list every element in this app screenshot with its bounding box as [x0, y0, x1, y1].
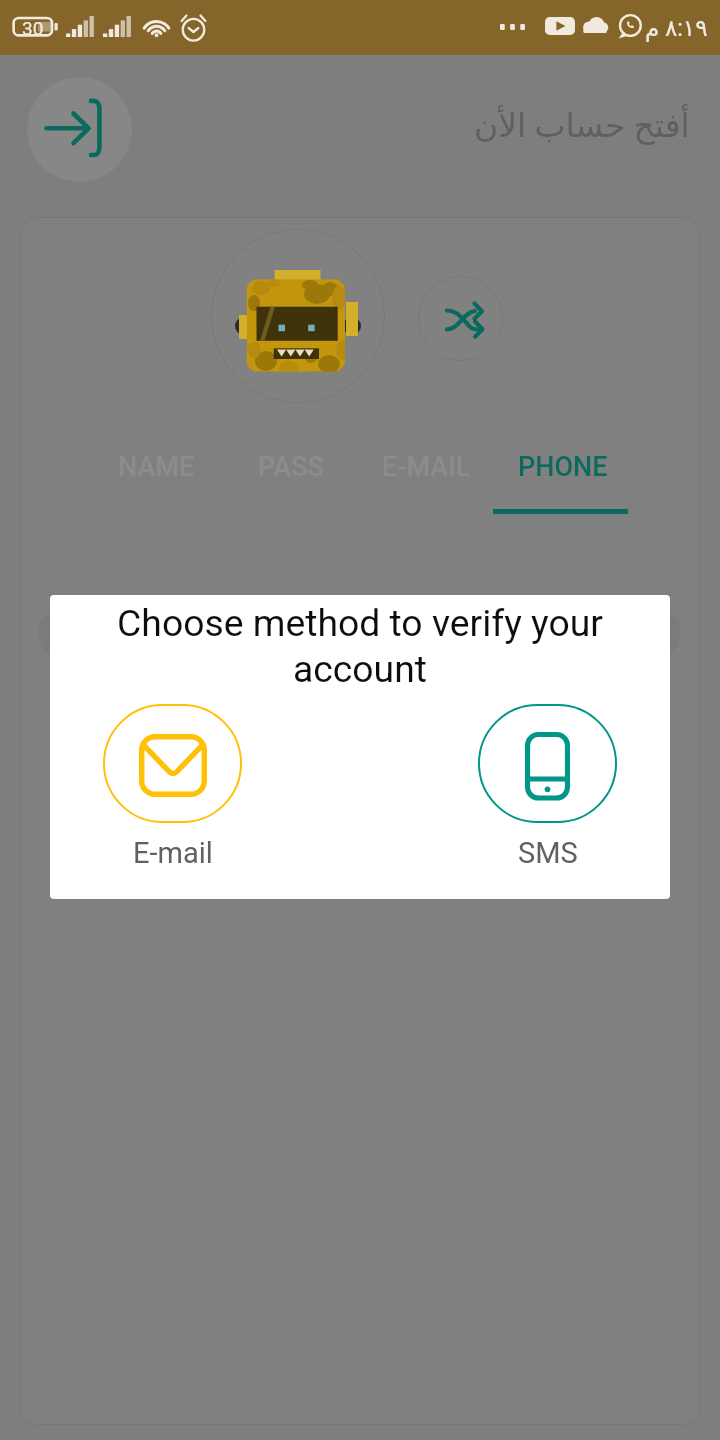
button[interactable]: E-MAIL — [382, 451, 471, 483]
button[interactable]: PASS — [258, 451, 324, 483]
button[interactable]: SMS — [478, 704, 617, 870]
staticText: E-mail — [133, 836, 213, 870]
button[interactable]: Shuffle avatar — [418, 276, 503, 361]
button[interactable]: Login — [26, 76, 133, 183]
staticText: Choose method to verify your account — [64, 601, 656, 691]
button[interactable]: PHONE — [518, 451, 608, 483]
button[interactable]: Avatar — [211, 229, 385, 403]
staticText: SMS — [518, 836, 578, 870]
staticText: 30 — [22, 17, 44, 39]
staticText: أفتح حساب الأن — [474, 106, 690, 145]
button[interactable]: NAME — [118, 451, 195, 483]
button[interactable]: E-mail — [103, 704, 242, 870]
staticText: ٨:١٩ م — [645, 15, 708, 42]
